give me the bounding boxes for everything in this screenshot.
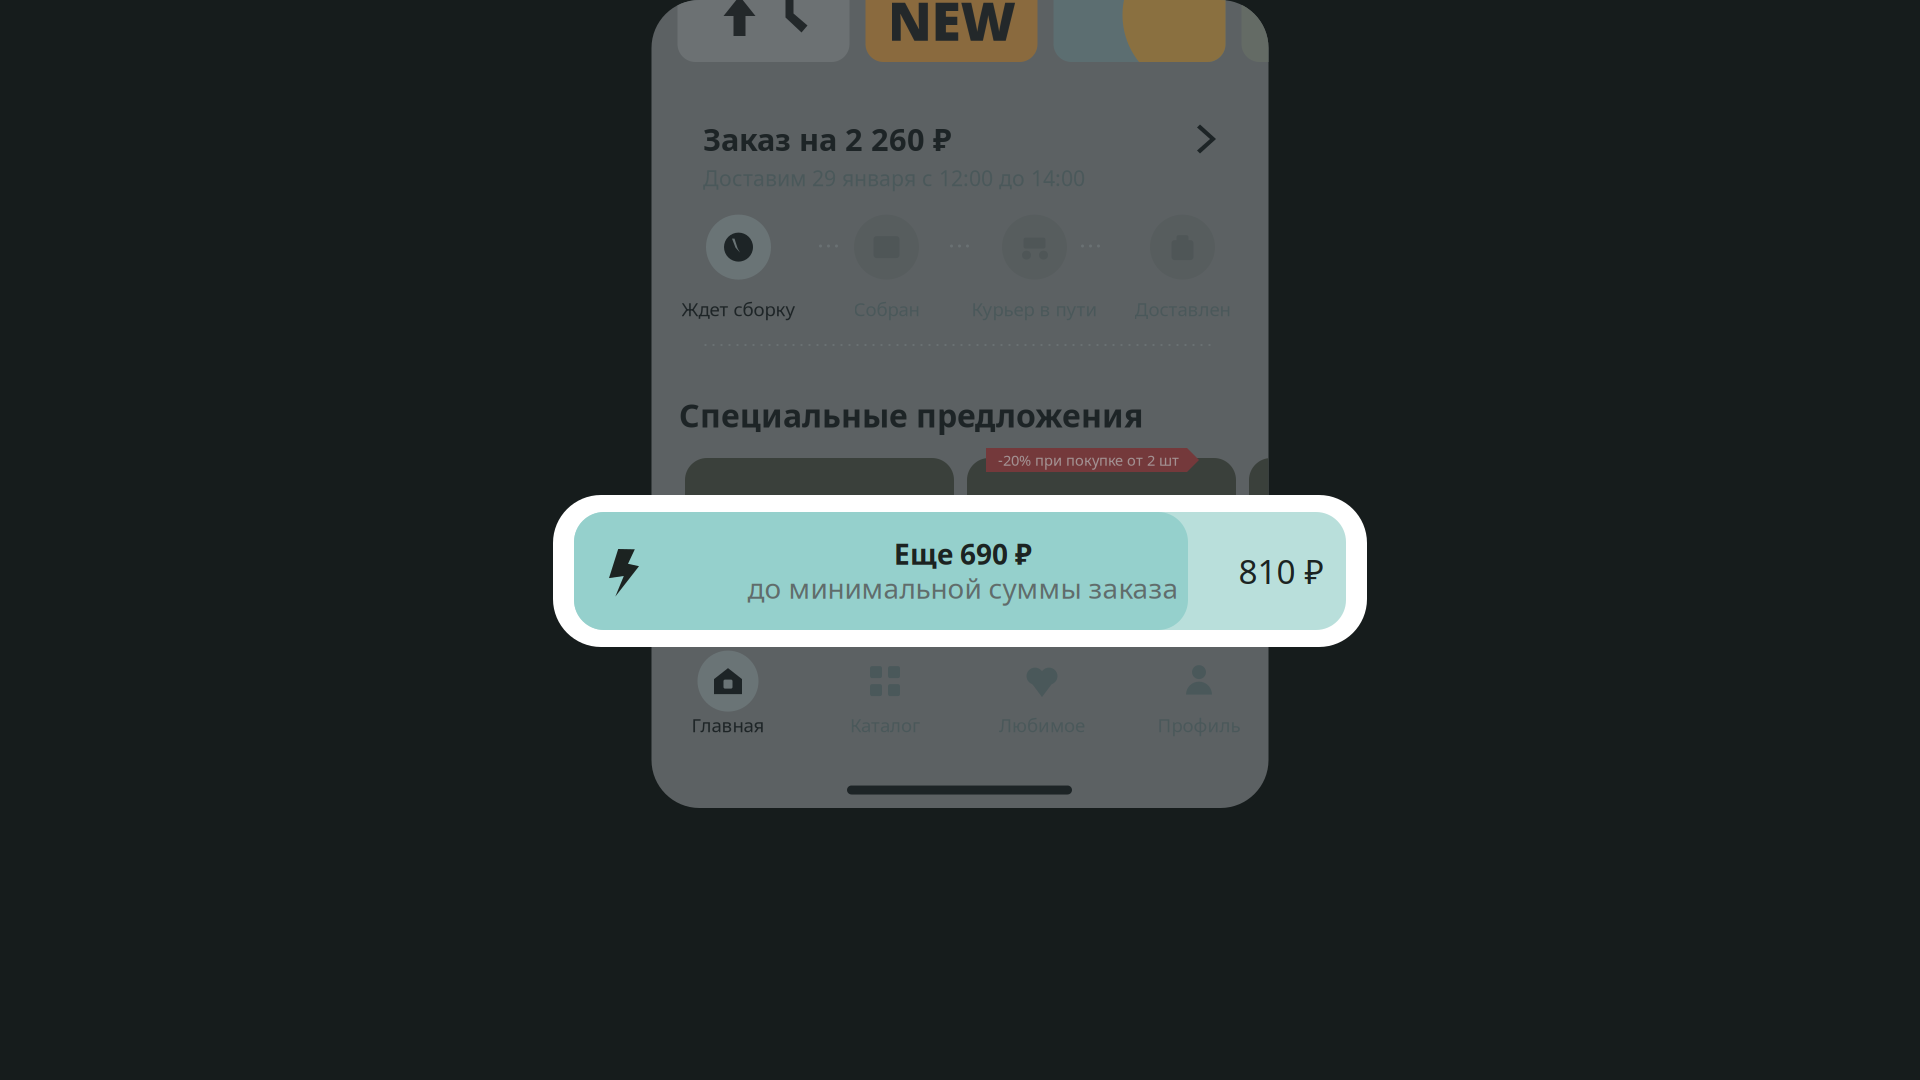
staticText: -20% при покупке от 2 шт [998,450,1179,470]
staticText: NEW [887,0,1015,55]
staticText: Доставим 29 января с 12:00 до 14:00 [703,164,1085,192]
staticText: Ждет сборку [681,297,795,321]
staticText: Доставлен [1134,297,1230,321]
staticText: Каталог [850,713,920,737]
button[interactable]: Халяль [685,458,954,644]
button[interactable] [1249,458,1518,644]
staticText: Курьер в пути [971,297,1097,321]
staticText: 810 ₽ [1238,549,1323,593]
staticText: до минимальной суммы заказа [747,569,1178,607]
staticText: Главная [691,713,764,737]
staticText: Кошер [994,617,1059,643]
button[interactable]: Любимое [968,653,1116,735]
button[interactable]: Профиль [1125,653,1273,735]
staticText: Халяль [710,617,780,643]
button[interactable] [677,0,849,62]
staticText: Собран [853,297,919,321]
staticText: Специальные предложения [679,394,1143,436]
staticText: Профиль [1157,713,1240,737]
button[interactable]: NEW [865,0,1037,62]
staticText: Еще 690 ₽ [894,535,1032,573]
staticText: Любимое [999,713,1085,737]
button[interactable] [1053,0,1225,62]
button[interactable]: Кошер [967,458,1236,644]
button[interactable]: Главная [654,653,802,735]
button[interactable]: Каталог [811,653,959,735]
button[interactable] [1241,0,1413,62]
staticText: Заказ на 2 260 ₽ [703,119,951,159]
